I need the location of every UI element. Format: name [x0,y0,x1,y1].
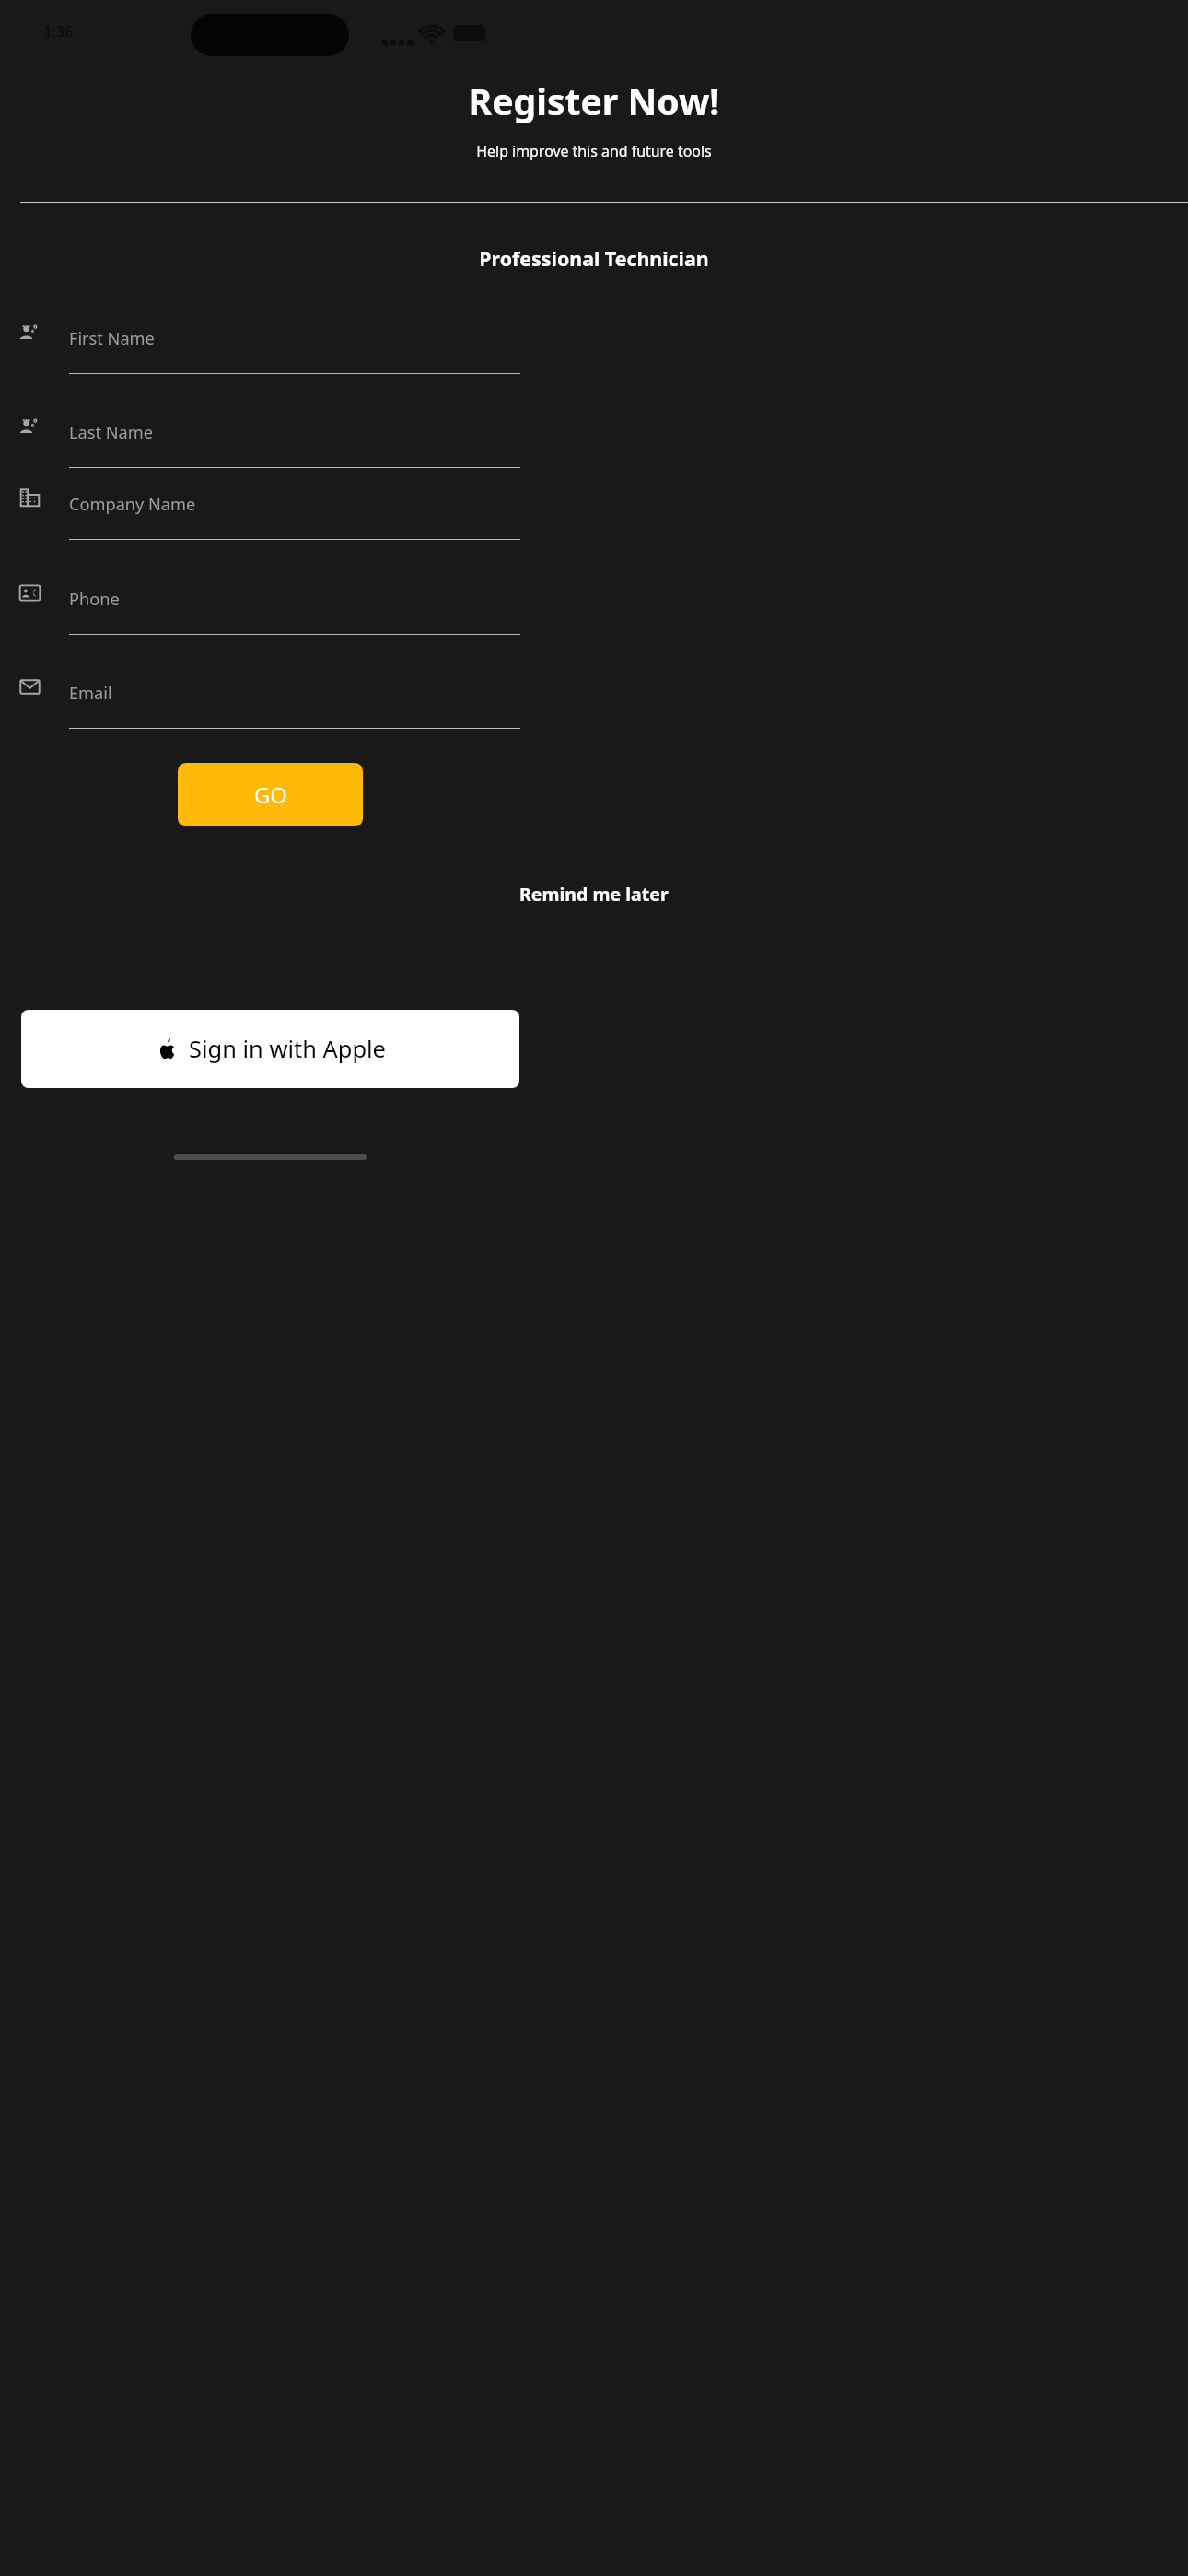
other: Technician [18,415,41,438]
button[interactable]: Email [0,673,1188,734]
staticText: GO [254,780,287,810]
other: Technician [18,321,41,344]
other: Phone [18,581,41,604]
button[interactable]: GO [178,763,363,826]
button[interactable]: Remind me later [0,879,1188,908]
staticText: Professional Technician [0,245,1188,272]
staticText: Sign in with Apple [189,1033,386,1065]
staticText: Last Name [69,421,153,444]
staticText: 1:36 [43,21,74,41]
button[interactable]: Technician [0,318,1188,380]
other: Company [18,486,41,509]
other: Email [18,675,41,698]
staticText: Register Now! [0,76,1188,125]
button[interactable]: Sign in with Apple [21,1010,519,1088]
staticText: Phone [69,588,120,611]
staticText: Email [69,682,112,705]
staticText: Company Name [69,493,196,516]
staticText: Remind me later [519,882,669,907]
button[interactable]: Phone [0,579,1188,640]
staticText: First Name [69,327,155,350]
button[interactable]: Technician [0,412,1188,474]
button[interactable]: Company [0,484,1188,545]
staticText: Help improve this and future tools [0,141,1188,161]
